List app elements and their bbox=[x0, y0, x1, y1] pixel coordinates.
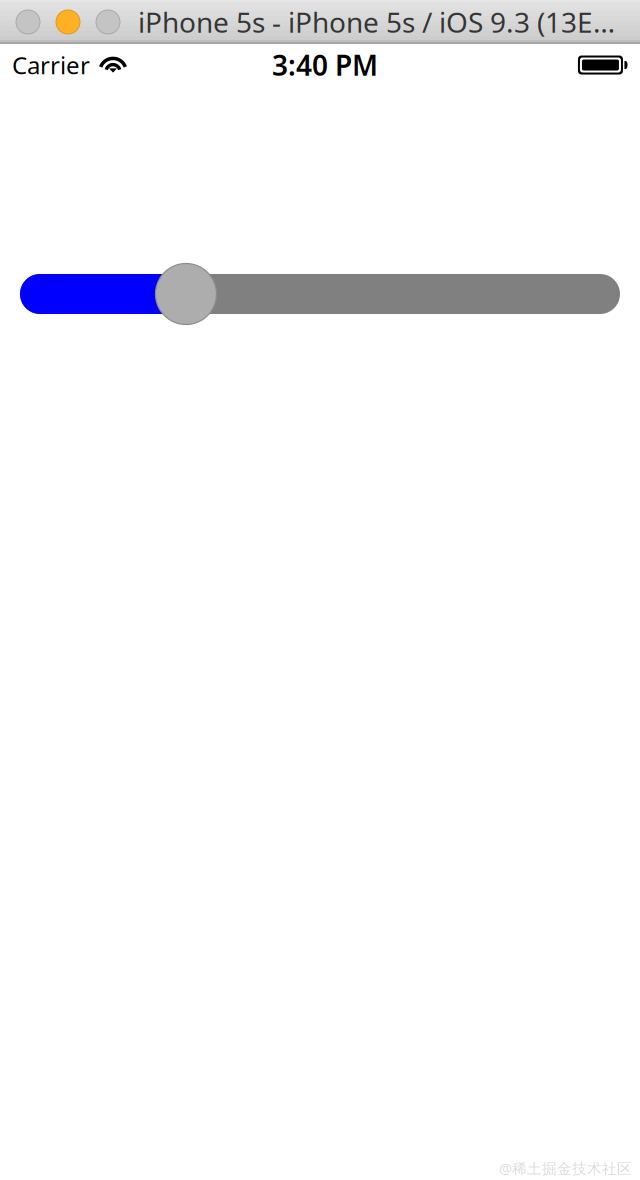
staticText: iPhone 5s - iPhone 5s / iOS 9.3 (13E… bbox=[138, 3, 615, 41]
staticText: 3:40 PM bbox=[272, 46, 378, 84]
button[interactable]: Minimise window bbox=[56, 10, 80, 34]
staticText: @稀土掘金技术社区 bbox=[499, 1158, 632, 1178]
button[interactable]: Slider bbox=[20, 263, 620, 324]
staticText: Carrier bbox=[12, 49, 90, 81]
button[interactable]: Zoom window bbox=[96, 10, 120, 34]
button[interactable]: Close window bbox=[16, 10, 40, 34]
